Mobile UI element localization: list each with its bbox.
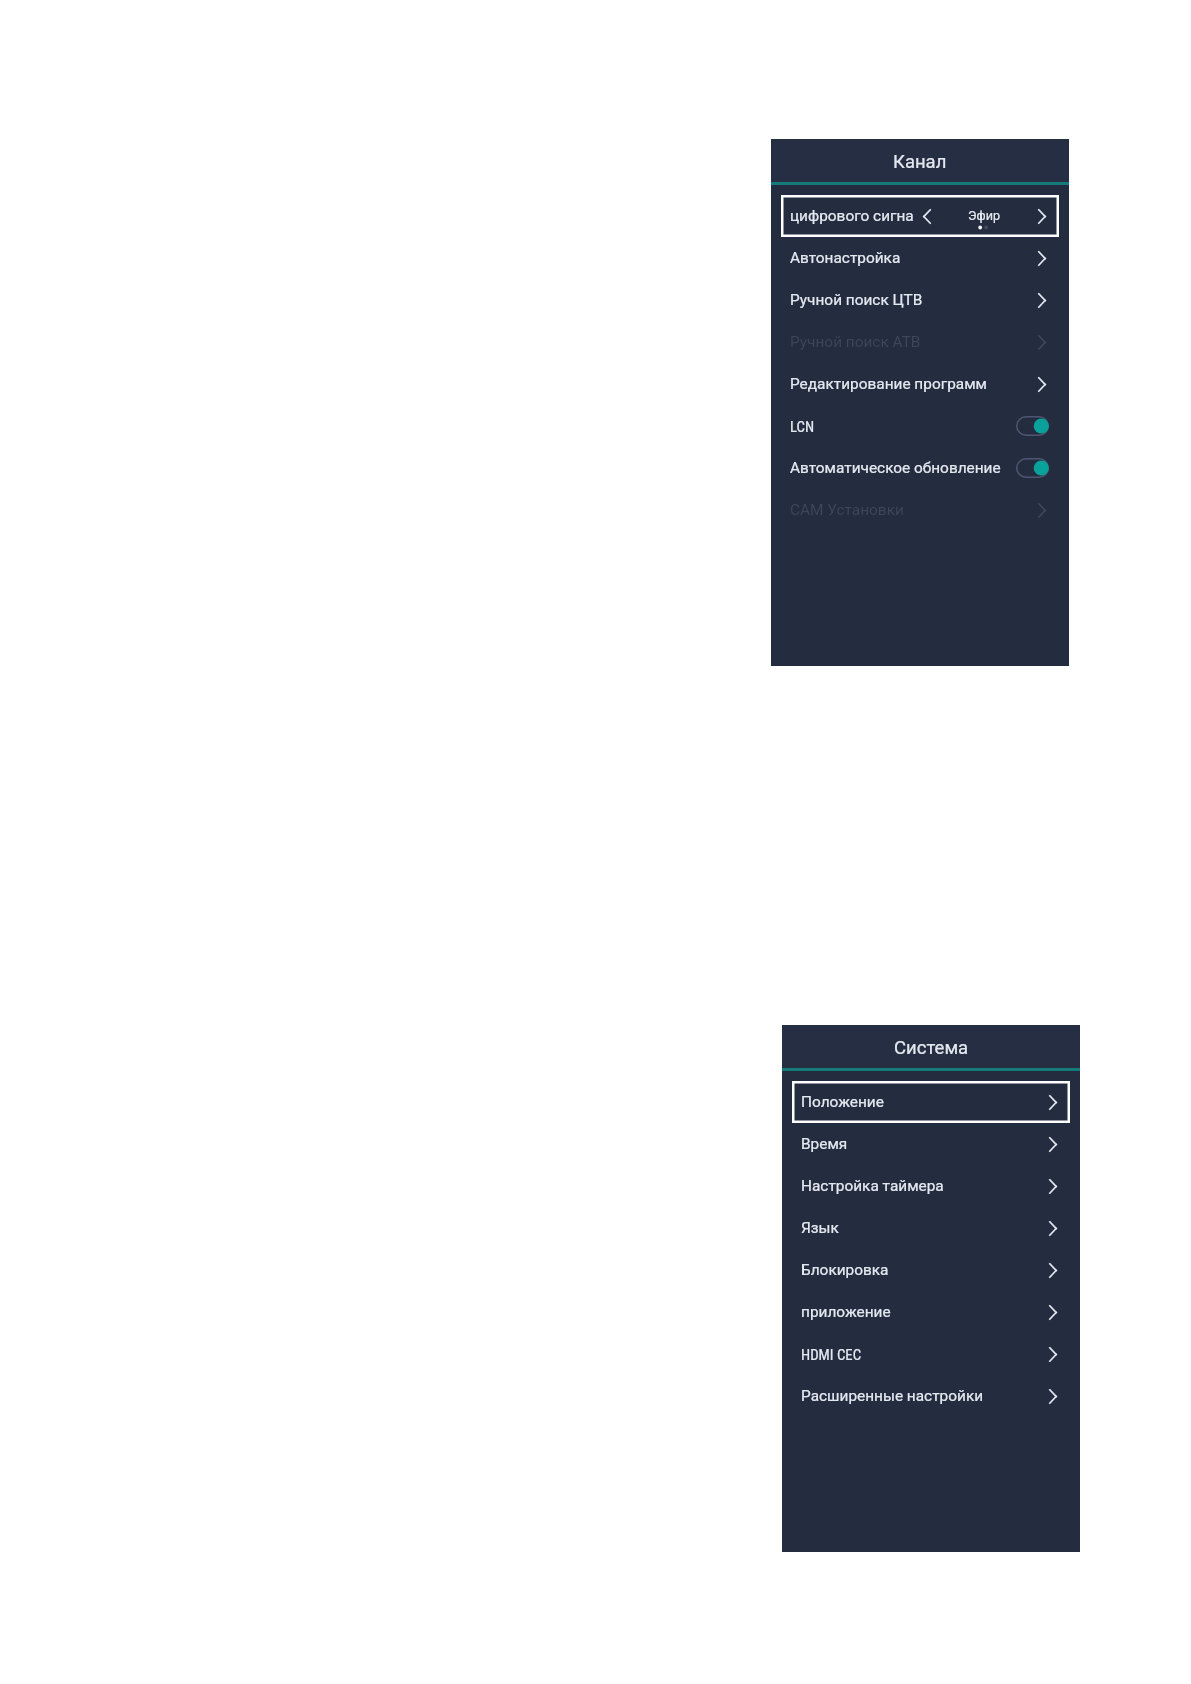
staticText: Настройка таймера — [801, 1177, 944, 1195]
staticText: LCN — [790, 418, 815, 435]
staticText: цифрового сигна — [790, 207, 914, 225]
staticText: Блокировка — [801, 1261, 889, 1279]
other: Open Время — [1049, 1137, 1057, 1152]
button[interactable]: CAM Установки — [771, 489, 1069, 531]
other: Open HDMI CEC — [1049, 1347, 1057, 1362]
button[interactable]: Ручной поиск АТВ — [771, 321, 1069, 363]
staticText: Ручной поиск ЦТВ — [790, 291, 923, 309]
button[interactable]: Расширенные настройки — [782, 1375, 1080, 1417]
staticText: приложение — [801, 1303, 891, 1321]
other: Open Язык — [1049, 1221, 1057, 1236]
button[interactable]: Автонастройка — [771, 237, 1069, 279]
button[interactable]: Настройка таймера — [782, 1165, 1080, 1207]
staticText: Язык — [801, 1219, 839, 1237]
button[interactable]: LCN switch, on — [1016, 416, 1049, 436]
other: Open приложение — [1049, 1305, 1057, 1320]
other: Open CAM Установки — [1038, 503, 1046, 518]
staticText: Время — [801, 1135, 848, 1153]
other: Open Автонастройка — [1038, 251, 1046, 266]
button[interactable]: Положение — [782, 1081, 1080, 1123]
button[interactable]: Язык — [782, 1207, 1080, 1249]
button[interactable]: Редактирование программ — [771, 363, 1069, 405]
other: Open Ручной поиск АТВ — [1038, 335, 1046, 350]
other: Open Редактирование программ — [1038, 377, 1046, 392]
button[interactable]: цифрового сигна — [771, 195, 1069, 237]
other: Open Настройка таймера — [1049, 1179, 1057, 1194]
button[interactable]: LCN — [771, 405, 1069, 447]
button[interactable]: Автоматическое обновление — [771, 447, 1069, 489]
staticText: Автоматическое обновление — [790, 459, 1001, 477]
staticText: Ручной поиск АТВ — [790, 333, 921, 351]
button[interactable]: Ручной поиск ЦТВ — [771, 279, 1069, 321]
other: Open Ручной поиск ЦТВ — [1038, 293, 1046, 308]
staticText: Расширенные настройки — [801, 1387, 984, 1405]
button[interactable]: HDMI CEC — [782, 1333, 1080, 1375]
staticText: Автонастройка — [790, 249, 901, 267]
other: Open Расширенные настройки — [1049, 1389, 1057, 1404]
button[interactable]: Next value — [1038, 209, 1046, 224]
staticText: Эфир — [968, 208, 1000, 223]
button[interactable]: приложение — [782, 1291, 1080, 1333]
button[interactable]: Автоматическое обновление switch, on — [1016, 458, 1049, 478]
staticText: Канал — [893, 151, 947, 173]
staticText: Система — [894, 1037, 969, 1059]
staticText: CAM Установки — [790, 501, 904, 519]
button[interactable]: Время — [782, 1123, 1080, 1165]
other: Open Положение — [1049, 1095, 1057, 1110]
staticText: HDMI CEC — [801, 1346, 862, 1363]
staticText: Положение — [801, 1093, 884, 1111]
other: Open Блокировка — [1049, 1263, 1057, 1278]
staticText: Редактирование программ — [790, 375, 987, 393]
button[interactable]: Блокировка — [782, 1249, 1080, 1291]
button[interactable]: Previous value — [923, 209, 931, 224]
